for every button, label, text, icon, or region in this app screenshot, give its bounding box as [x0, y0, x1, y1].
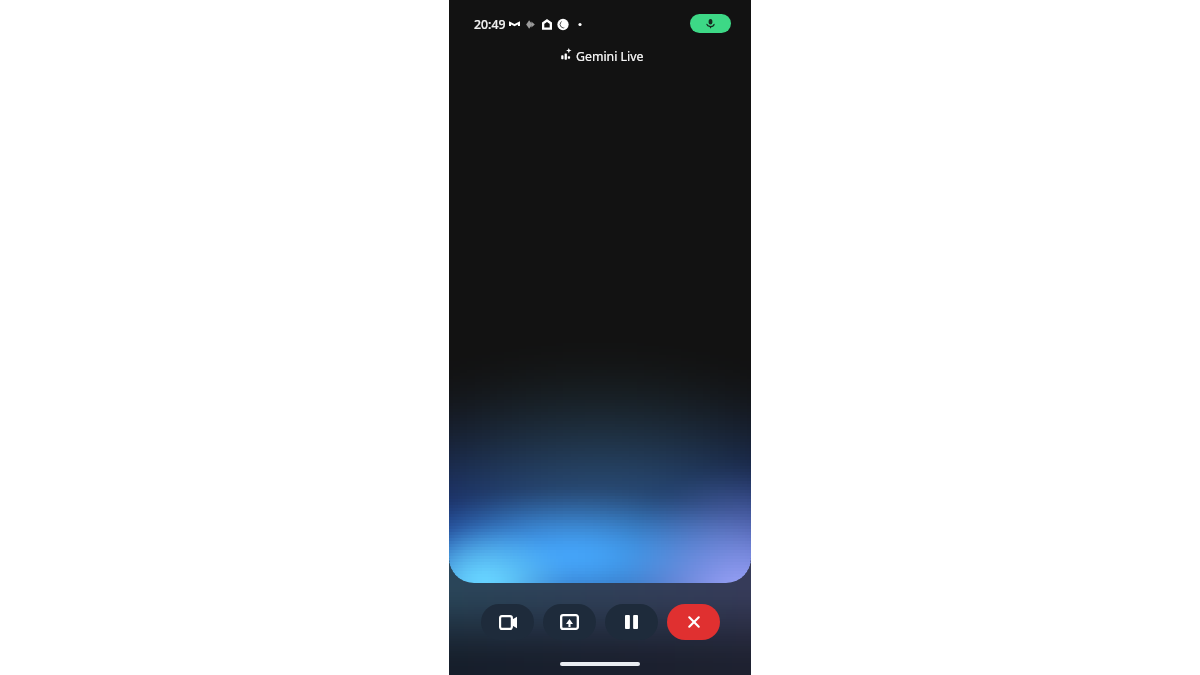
staticText: Gemini Live [576, 48, 644, 65]
button[interactable]: Turn on camera [481, 604, 534, 640]
button[interactable]: Microphone is on [690, 14, 731, 33]
staticText: 20:49 [474, 16, 506, 33]
button[interactable]: End session [667, 604, 720, 640]
button[interactable]: Pause [605, 604, 658, 640]
button[interactable]: Share your screen [543, 604, 596, 640]
